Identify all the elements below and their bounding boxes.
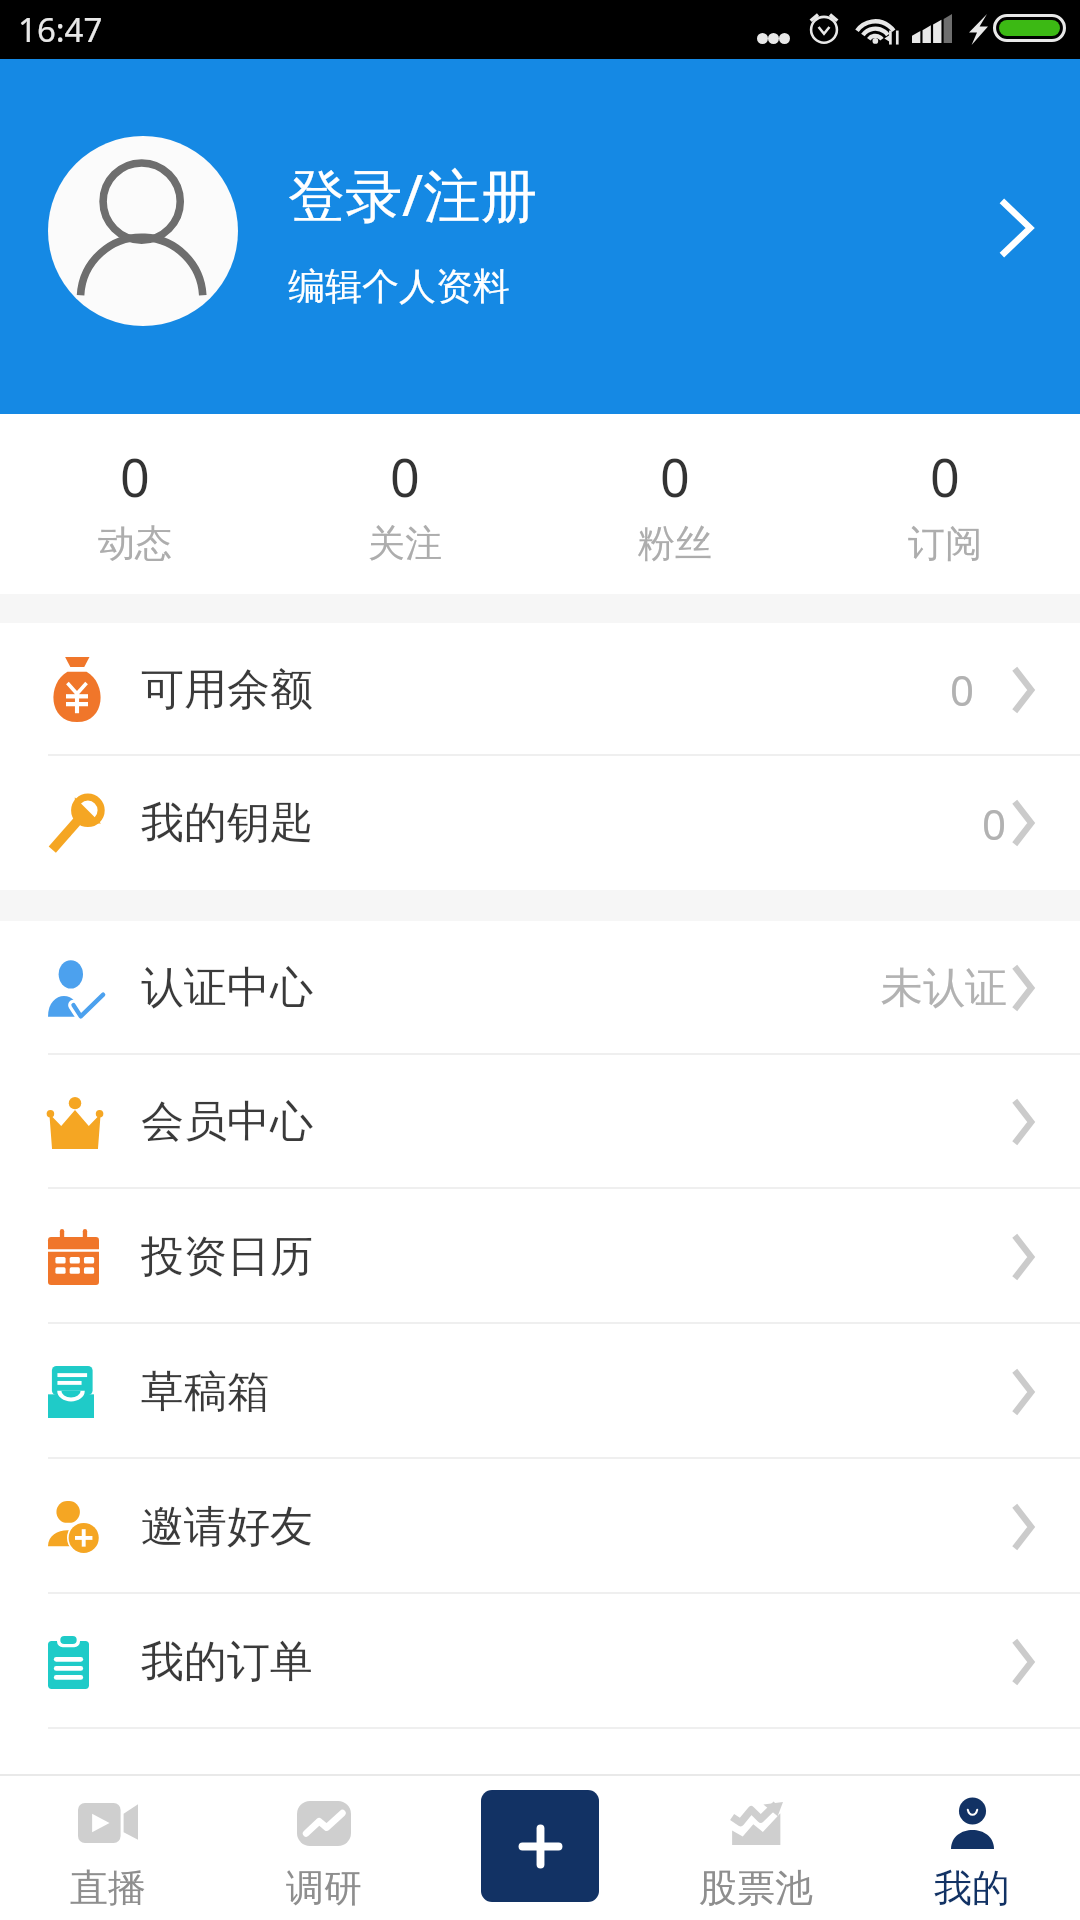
staticText: 投资日历 (141, 1230, 313, 1284)
button[interactable]: 会员中心 (0, 1055, 1080, 1189)
staticText: 0 (120, 441, 150, 512)
button[interactable]: 我的订单 (0, 1594, 1080, 1729)
button[interactable]: 我的钥匙 (0, 756, 1080, 890)
staticText: 草稿箱 (141, 1365, 270, 1419)
staticText: 0 (660, 441, 690, 512)
staticText: 0 (390, 441, 420, 512)
button[interactable]: 直播 (0, 1776, 216, 1920)
staticText: 会员中心 (141, 1095, 313, 1149)
staticText: 可用余额 (141, 663, 313, 717)
staticText: 调研 (286, 1864, 362, 1912)
staticText: 我的 (934, 1864, 1010, 1912)
staticText: 关注 (368, 520, 442, 567)
staticText: 未认证 (881, 962, 1007, 1015)
staticText: 认证中心 (141, 961, 313, 1015)
button[interactable]: 0 (0, 414, 270, 594)
button[interactable]: Add (481, 1790, 599, 1902)
button[interactable]: 0 (270, 414, 540, 594)
staticText: 直播 (70, 1864, 146, 1912)
button[interactable]: 投资日历 (0, 1189, 1080, 1324)
button[interactable]: 0 (810, 414, 1080, 594)
button[interactable]: 邀请好友 (0, 1459, 1080, 1594)
staticText: 我的钥匙 (141, 796, 313, 850)
staticText: 粉丝 (638, 520, 712, 567)
staticText: 股票池 (699, 1864, 813, 1912)
staticText: 动态 (98, 520, 172, 567)
button[interactable]: 股票池 (648, 1776, 864, 1920)
staticText: 16:47 (18, 7, 103, 52)
button[interactable]: 可用余额 (0, 623, 1080, 756)
staticText: 0 (930, 441, 960, 512)
button[interactable]: 登录/注册 (0, 59, 1080, 414)
button[interactable]: 我的 (864, 1776, 1080, 1920)
staticText: 0 (982, 795, 1007, 852)
staticText: 登录/注册 (288, 155, 538, 233)
button[interactable]: 调研 (216, 1776, 432, 1920)
button[interactable]: 草稿箱 (0, 1324, 1080, 1459)
button[interactable]: 认证中心 (0, 921, 1080, 1055)
staticText: 我的订单 (141, 1635, 313, 1689)
staticText: 编辑个人资料 (288, 263, 510, 310)
button[interactable]: 0 (540, 414, 810, 594)
staticText: 邀请好友 (141, 1500, 313, 1554)
staticText: 订阅 (908, 520, 982, 567)
staticText: 0 (950, 661, 975, 718)
